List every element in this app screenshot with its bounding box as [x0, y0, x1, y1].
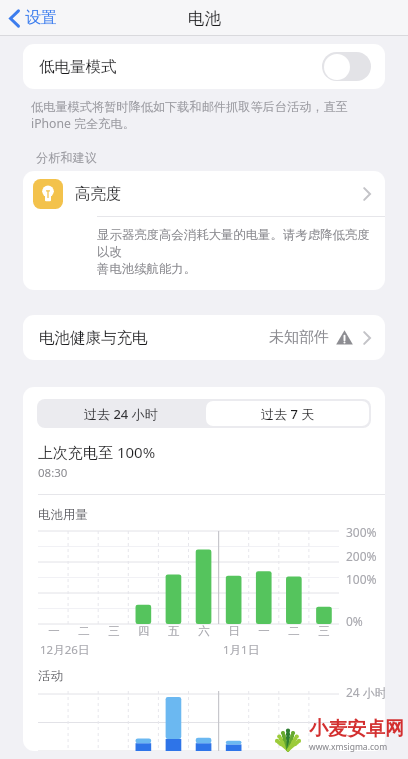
- staticText: 显示器亮度高会消耗大量的电量。请考虑降低亮度以改 善电池续航能力。: [97, 227, 373, 277]
- staticText: 五: [168, 624, 180, 638]
- staticText: 高亮度: [75, 184, 122, 204]
- staticText: 低电量模式将暂时降低如下载和邮件抓取等后台活动，直至 iPhone 完全充电。: [31, 99, 348, 132]
- staticText: 上次充电至 100%: [38, 442, 156, 462]
- staticText: 设置: [25, 8, 57, 28]
- staticText: 电池: [188, 8, 221, 29]
- staticText: 0%: [346, 613, 363, 629]
- button[interactable]: 设置: [0, 3, 69, 33]
- button[interactable]: 低电量模式: [23, 44, 385, 89]
- button[interactable]: 电池健康与充电: [23, 315, 385, 360]
- staticText: 未知部件: [269, 328, 329, 347]
- button[interactable]: 高亮度: [23, 171, 385, 216]
- staticText: 活动: [38, 668, 63, 684]
- button[interactable]: 低电量模式开关: [322, 52, 371, 81]
- staticText: 电池健康与充电: [39, 328, 148, 348]
- staticText: 过去 24 小时: [84, 405, 158, 423]
- staticText: 08:30: [38, 465, 68, 481]
- staticText: 三: [318, 624, 330, 638]
- staticText: 四: [138, 624, 150, 638]
- staticText: 24 小时: [346, 684, 385, 700]
- staticText: 低电量模式: [39, 57, 117, 77]
- staticText: 二: [78, 624, 90, 638]
- staticText: 二: [288, 624, 300, 638]
- staticText: 小麦安卓网: [309, 717, 404, 741]
- staticText: 一: [258, 624, 270, 638]
- staticText: 100%: [346, 571, 377, 587]
- staticText: www.xmsigma.com: [309, 741, 388, 753]
- other: 警告: [336, 329, 353, 346]
- button[interactable]: 过去 7 天: [206, 401, 369, 426]
- button[interactable]: 过去 24 小时: [37, 399, 204, 428]
- staticText: 200%: [346, 548, 377, 564]
- staticText: 300%: [346, 524, 377, 540]
- staticText: 1月1日: [223, 642, 260, 658]
- staticText: 过去 7 天: [261, 405, 315, 423]
- staticText: 六: [198, 624, 210, 638]
- staticText: 分析和建议: [36, 150, 97, 165]
- staticText: 电池用量: [38, 507, 88, 523]
- staticText: 一: [48, 624, 60, 638]
- staticText: 日: [228, 624, 240, 638]
- staticText: 三: [108, 624, 120, 638]
- staticText: 12月26日: [40, 642, 90, 658]
